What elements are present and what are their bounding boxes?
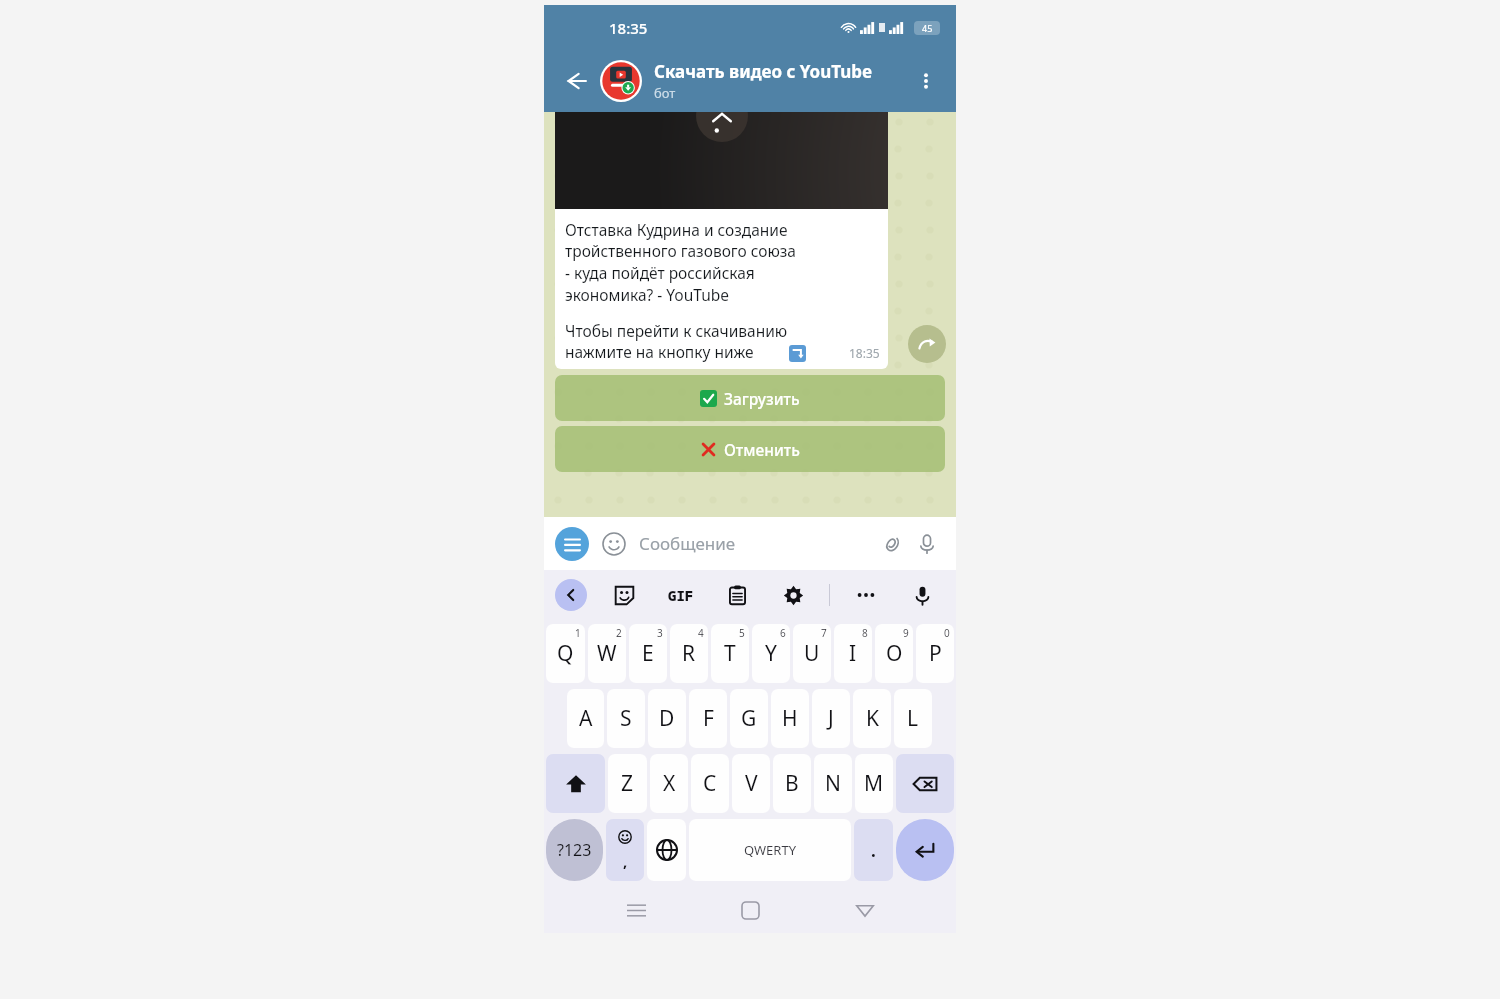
staticText: B (785, 769, 799, 798)
button[interactable]: U (793, 624, 831, 683)
button[interactable]: L (894, 689, 932, 748)
button[interactable]: Shift (546, 754, 605, 813)
button[interactable]: Back (842, 887, 888, 933)
staticText: L (907, 704, 919, 733)
button[interactable]: Stickers (604, 575, 644, 615)
staticText: P (929, 639, 942, 668)
button[interactable]: Z (608, 754, 647, 813)
button[interactable]: Y (752, 624, 790, 683)
staticText: Q (557, 639, 574, 668)
staticText: H (782, 704, 798, 733)
staticText: . (871, 839, 876, 862)
button[interactable]: D (648, 689, 686, 748)
button[interactable]: Clipboard (717, 575, 757, 615)
button[interactable]: Enter (896, 819, 954, 881)
staticText: Z (621, 769, 634, 798)
staticText: E (642, 639, 654, 668)
button[interactable]: Q (546, 624, 585, 683)
staticText: 45 (922, 22, 933, 34)
staticText: 18:35 (609, 18, 648, 38)
staticText: Отставка Кудрина и создание тройственног… (565, 219, 796, 306)
staticText: O (886, 639, 903, 668)
staticText: I (849, 639, 857, 668)
button[interactable]: ?123 (546, 819, 603, 881)
staticText: V (745, 769, 758, 798)
staticText: C (703, 769, 717, 798)
button[interactable]: More options (906, 61, 946, 101)
staticText: W (597, 639, 617, 668)
staticText: Сообщение (639, 532, 873, 555)
staticText: 0 (944, 626, 950, 640)
button[interactable]: Отставка Кудрина и создание тройственног… (555, 112, 888, 369)
button[interactable]: C (691, 754, 729, 813)
staticText: 1 (575, 626, 581, 640)
button[interactable]: G (730, 689, 768, 748)
staticText: Отменить (724, 439, 800, 460)
button[interactable]: Backspace (896, 754, 954, 813)
button[interactable]: Voice input (902, 575, 942, 615)
button[interactable]: T (711, 624, 749, 683)
button[interactable]: Home (727, 887, 773, 933)
staticText: Чтобы перейти к скачиванию нажмите на кн… (565, 320, 788, 363)
staticText: U (804, 639, 820, 668)
button[interactable]: I (834, 624, 872, 683)
staticText: X (663, 769, 676, 798)
button[interactable]: R (670, 624, 708, 683)
button[interactable]: Отменить (555, 426, 945, 472)
button[interactable]: M (855, 754, 893, 813)
staticText: A (579, 704, 593, 733)
staticText: J (828, 704, 834, 733)
staticText: 9 (903, 626, 909, 640)
staticText: , (623, 851, 628, 871)
button[interactable]: X (650, 754, 688, 813)
button[interactable]: Emoji and comma (606, 819, 644, 881)
staticText: Y (765, 639, 777, 668)
staticText: ?123 (557, 839, 592, 861)
button[interactable]: Загрузить (555, 375, 945, 421)
staticText: QWERTY (744, 841, 797, 859)
button[interactable]: QWERTY (689, 819, 851, 881)
staticText: F (703, 704, 714, 733)
staticText: 5 (739, 626, 745, 640)
button[interactable]: Settings (773, 575, 813, 615)
staticText: GIF (668, 586, 694, 605)
button[interactable]: W (588, 624, 626, 683)
staticText: 4 (698, 626, 704, 640)
staticText: 6 (780, 626, 786, 640)
button[interactable]: E (629, 624, 667, 683)
button[interactable]: Attach (873, 526, 909, 562)
staticText: 18:35 (849, 345, 880, 361)
staticText: M (864, 769, 884, 798)
button[interactable]: GIF (661, 575, 701, 615)
staticText: T (724, 639, 736, 668)
button[interactable]: Collapse toolbar (555, 579, 587, 611)
button[interactable]: Change language (647, 819, 686, 881)
button[interactable]: H (771, 689, 809, 748)
button[interactable]: Emoji (599, 529, 629, 559)
button[interactable]: K (853, 689, 891, 748)
staticText: D (659, 704, 675, 733)
button[interactable]: Bot menu (555, 527, 589, 561)
button[interactable]: Back (554, 59, 598, 103)
button[interactable]: More (846, 575, 886, 615)
button[interactable]: N (814, 754, 852, 813)
staticText: K (866, 704, 879, 733)
staticText: R (682, 639, 696, 668)
button[interactable]: V (732, 754, 770, 813)
button[interactable]: O (875, 624, 913, 683)
button[interactable]: J (812, 689, 850, 748)
button[interactable]: P (916, 624, 954, 683)
staticText: 7 (821, 626, 827, 640)
button[interactable]: Recents (613, 887, 659, 933)
button[interactable]: B (773, 754, 811, 813)
button[interactable]: Voice message (909, 526, 945, 562)
button[interactable]: Forward (908, 325, 946, 363)
button[interactable]: A (567, 689, 604, 748)
staticText: Скачать видео с YouTube (654, 60, 873, 83)
button[interactable]: F (689, 689, 727, 748)
staticText: 3 (657, 626, 663, 640)
button[interactable]: . (854, 819, 893, 881)
staticText: S (620, 704, 632, 733)
staticText: 2 (616, 626, 622, 640)
button[interactable]: S (607, 689, 645, 748)
